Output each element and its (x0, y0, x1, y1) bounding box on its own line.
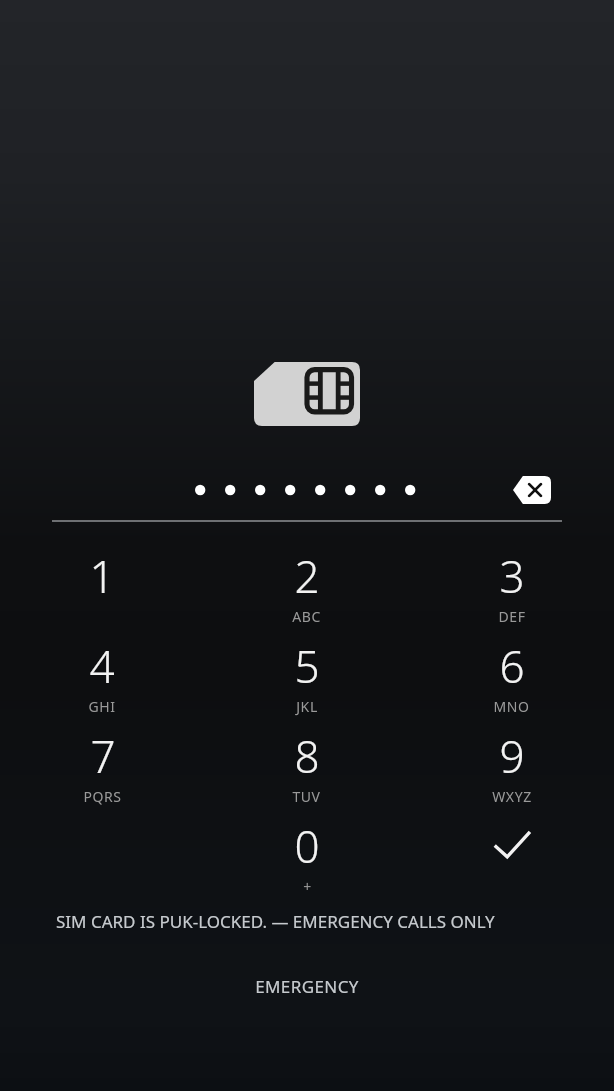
staticText: 9 (499, 726, 525, 786)
button[interactable]: EMERGENCY (235, 967, 379, 1006)
button[interactable]: 6 (409, 631, 614, 721)
staticText: 4 (89, 636, 115, 696)
staticText: SIM CARD IS PUK-LOCKED. — EMERGENCY CALL… (56, 910, 495, 933)
staticText: 0 (294, 816, 320, 876)
staticText: 2 (294, 546, 320, 606)
button[interactable]: 2 (204, 541, 409, 631)
button[interactable]: Enter (409, 811, 614, 901)
staticText: PQRS (83, 787, 122, 806)
staticText: 7 (90, 726, 116, 786)
staticText: MNO (493, 697, 530, 716)
staticText: 3 (499, 546, 525, 606)
staticText: GHI (88, 697, 116, 716)
staticText: EMERGENCY (255, 975, 359, 998)
staticText: 6 (499, 636, 525, 696)
button[interactable]: 0 (204, 811, 409, 901)
staticText: + (303, 877, 312, 896)
staticText: 1 (89, 546, 115, 606)
staticText: ABC (292, 607, 321, 626)
button[interactable]: 5 (204, 631, 409, 721)
button[interactable]: 8 (204, 721, 409, 811)
staticText: 8 (294, 726, 320, 786)
staticText: JKL (296, 697, 318, 716)
button[interactable]: 7 (0, 721, 204, 811)
staticText: DEF (498, 607, 526, 626)
staticText: TUV (292, 787, 321, 806)
button[interactable]: 1 (0, 541, 204, 631)
staticText: WXYZ (492, 787, 532, 806)
button[interactable]: Backspace (505, 470, 559, 510)
button[interactable]: 4 (0, 631, 204, 721)
button[interactable]: 3 (409, 541, 614, 631)
button[interactable]: 9 (409, 721, 614, 811)
staticText: 5 (294, 636, 320, 696)
